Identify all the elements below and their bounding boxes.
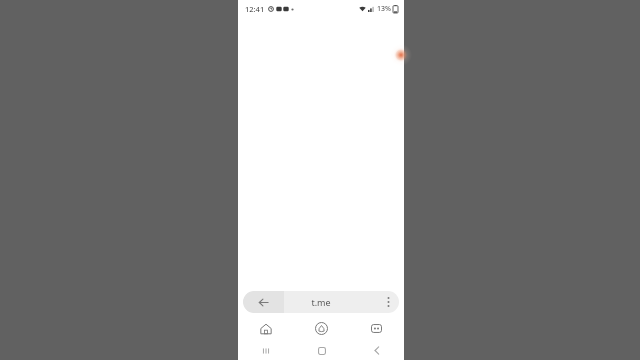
button[interactable]: Back — [349, 341, 404, 360]
button[interactable]: Switch tabs — [349, 316, 404, 341]
button[interactable]: More options — [377, 291, 399, 313]
button[interactable]: Site protections — [294, 316, 349, 341]
staticText: 13% — [377, 4, 391, 14]
button[interactable]: Home — [294, 341, 349, 360]
staticText: t.me — [311, 296, 331, 308]
button[interactable]: Recent apps — [238, 341, 294, 360]
button[interactable]: Home — [238, 316, 294, 341]
button[interactable]: Back — [243, 291, 284, 313]
staticText: 12:41 — [245, 4, 265, 14]
